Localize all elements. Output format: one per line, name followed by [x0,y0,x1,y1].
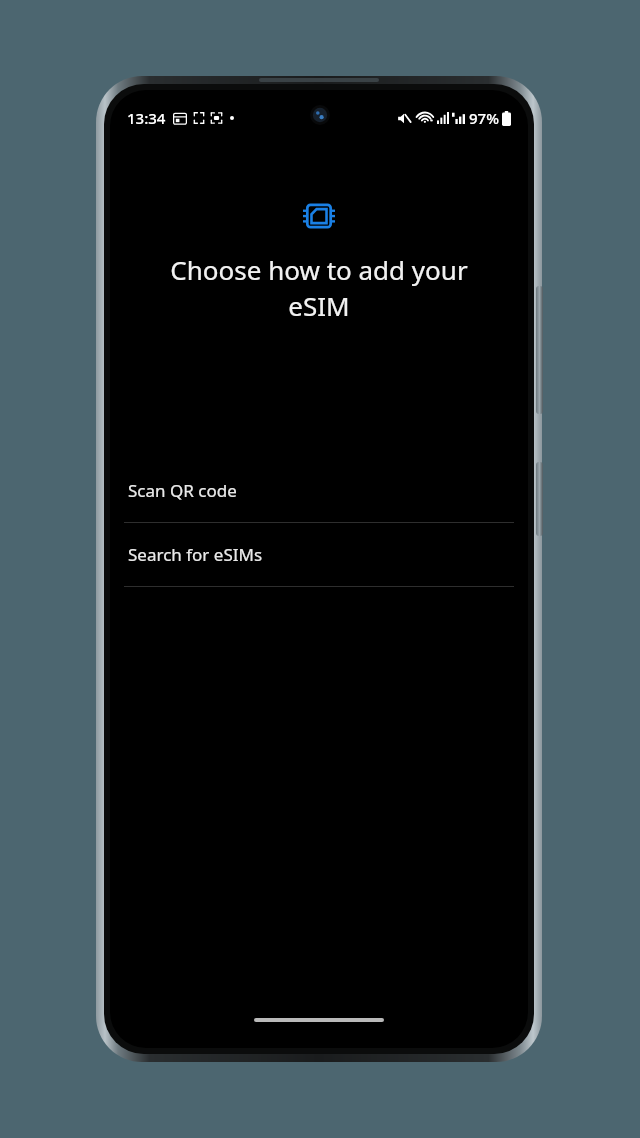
staticText: 13:34 [127,108,166,128]
button[interactable]: Search for eSIMs [110,523,528,586]
staticText: Search for eSIMs [128,543,263,566]
staticText: 97% [469,108,499,128]
other: Home gesture [254,1018,384,1022]
staticText: Scan QR code [128,479,237,502]
other: eSIM [303,202,335,230]
staticText: Choose how to add your eSIM [142,252,496,324]
button[interactable]: Scan QR code [110,459,528,522]
